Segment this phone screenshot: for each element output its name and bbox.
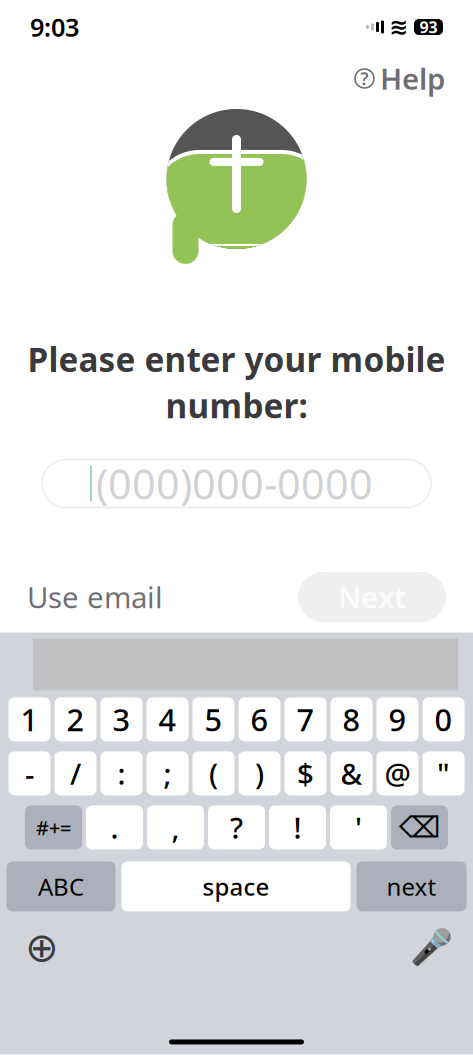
button[interactable]: $: [284, 751, 326, 795]
button[interactable]: Dictate: [411, 927, 451, 967]
staticText: &: [340, 754, 362, 793]
staticText: ': [355, 808, 362, 847]
staticText: ≋: [389, 14, 408, 40]
button[interactable]: space: [121, 861, 350, 911]
staticText: :: [117, 754, 125, 793]
staticText: 5: [204, 699, 222, 740]
staticText: $: [297, 754, 314, 793]
staticText: 7: [296, 699, 314, 740]
staticText: @: [384, 754, 410, 793]
staticText: Use email: [27, 577, 163, 616]
staticText: (000)000-0000: [96, 456, 373, 511]
button[interactable]: (: [192, 751, 234, 795]
button[interactable]: 3: [100, 697, 142, 741]
button[interactable]: Change keyboard: [22, 927, 62, 967]
button[interactable]: 2: [54, 697, 96, 741]
button[interactable]: 6: [238, 697, 280, 741]
staticText: 8: [342, 699, 360, 740]
button[interactable]: Next: [298, 572, 446, 622]
staticText: 6: [250, 699, 268, 740]
staticText: Please enter your mobile: [27, 337, 445, 381]
button[interactable]: ,: [147, 805, 204, 849]
button[interactable]: /: [54, 751, 96, 795]
button[interactable]: 0: [422, 697, 464, 741]
button[interactable]: .: [86, 805, 143, 849]
staticText: 9:03: [30, 10, 79, 44]
staticText: Next: [338, 577, 406, 616]
staticText: ABC: [38, 870, 84, 902]
staticText: space: [202, 870, 269, 902]
button[interactable]: !: [269, 805, 326, 849]
button[interactable]: ': [330, 805, 387, 849]
button[interactable]: @: [376, 751, 418, 795]
staticText: ⌫: [399, 811, 440, 844]
button[interactable]: #+=: [25, 805, 82, 849]
button[interactable]: next: [356, 861, 466, 911]
staticText: /: [70, 754, 81, 793]
button[interactable]: :: [100, 751, 142, 795]
staticText: number:: [165, 383, 307, 427]
staticText: ": [437, 754, 450, 793]
button[interactable]: 4: [146, 697, 188, 741]
staticText: 93: [419, 16, 437, 38]
button[interactable]: Use email: [27, 569, 163, 624]
staticText: 🎤: [409, 928, 452, 967]
staticText: ?: [230, 808, 243, 847]
staticText: !: [293, 808, 301, 847]
button[interactable]: 1: [8, 697, 50, 741]
button[interactable]: 9: [376, 697, 418, 741]
button[interactable]: 8: [330, 697, 372, 741]
staticText: ?: [360, 67, 368, 90]
button[interactable]: ": [422, 751, 464, 795]
staticText: 9: [388, 699, 406, 740]
button[interactable]: ABC: [6, 861, 115, 911]
button[interactable]: Delete: [391, 805, 448, 849]
button[interactable]: &: [330, 751, 372, 795]
staticText: -: [25, 754, 34, 793]
button[interactable]: 5: [192, 697, 234, 741]
staticText: 4: [158, 699, 176, 740]
staticText: 1: [20, 699, 38, 740]
button[interactable]: ?: [208, 805, 265, 849]
staticText: 2: [66, 699, 84, 740]
staticText: ;: [163, 754, 171, 793]
staticText: #+=: [36, 814, 71, 841]
button[interactable]: ): [238, 751, 280, 795]
button[interactable]: ?: [345, 54, 455, 103]
staticText: Help: [380, 59, 445, 98]
button[interactable]: -: [8, 751, 50, 795]
staticText: (: [209, 754, 218, 793]
staticText: .: [110, 808, 118, 847]
staticText: 3: [112, 699, 130, 740]
button[interactable]: ;: [146, 751, 188, 795]
staticText: 0: [434, 699, 452, 740]
staticText: ,: [171, 808, 179, 847]
staticText: next: [386, 870, 436, 902]
staticText: ⊕: [25, 925, 59, 970]
button[interactable]: 7: [284, 697, 326, 741]
staticText: ): [255, 754, 264, 793]
